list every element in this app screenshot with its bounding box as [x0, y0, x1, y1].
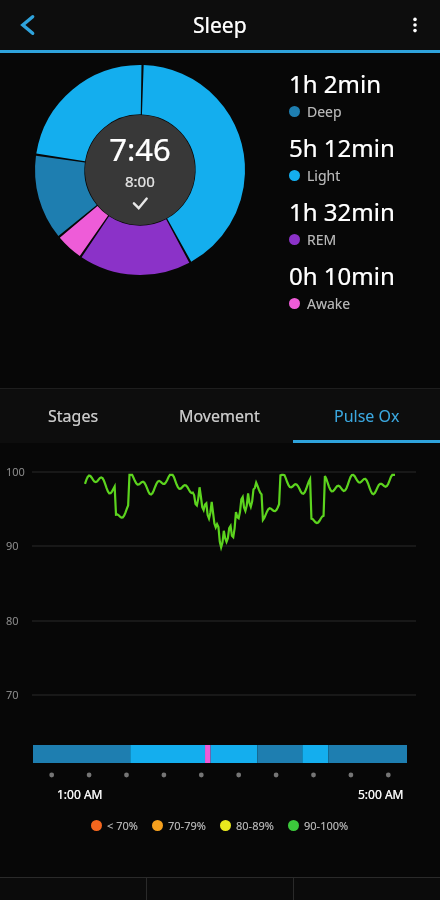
staticText: Light — [307, 166, 341, 185]
staticText: 70-79% — [168, 818, 206, 833]
staticText: 1:00 AM — [57, 786, 103, 802]
button[interactable]: 90-100% — [288, 818, 349, 833]
button[interactable]: 80-89% — [220, 818, 274, 833]
staticText: 5h 12min — [289, 131, 395, 164]
button[interactable]: 70-79% — [152, 818, 206, 833]
staticText: Sleep — [193, 11, 247, 40]
staticText: < 70% — [107, 818, 138, 833]
button[interactable]: Stages — [0, 389, 146, 443]
staticText: 8:00 — [125, 171, 155, 191]
staticText: 80-89% — [236, 818, 274, 833]
button[interactable]: Back — [0, 0, 56, 50]
button[interactable]: 1h 32min — [289, 195, 395, 249]
staticText: 100 — [6, 464, 25, 479]
staticText: Pulse Ox — [334, 405, 400, 427]
staticText: 80 — [6, 613, 19, 628]
staticText: Movement — [179, 405, 260, 427]
staticText: 7:46 — [109, 128, 171, 170]
staticText: Deep — [307, 102, 342, 121]
button[interactable]: Movement — [146, 389, 293, 443]
button[interactable]: More options — [390, 0, 440, 50]
button[interactable]: 0h 10min — [289, 259, 395, 313]
staticText: 90 — [6, 538, 19, 553]
staticText: 70 — [6, 687, 19, 702]
staticText: 1h 32min — [289, 195, 395, 228]
button[interactable]: 5h 12min — [289, 131, 395, 185]
staticText: 0h 10min — [289, 259, 395, 292]
staticText: 90-100% — [304, 818, 349, 833]
button[interactable]: Pulse Ox — [293, 389, 440, 443]
staticText: Awake — [307, 294, 351, 313]
staticText: 1h 2min — [289, 67, 381, 100]
staticText: Stages — [48, 405, 99, 427]
button[interactable]: 1h 2min — [289, 67, 381, 121]
staticText: REM — [307, 230, 337, 249]
button[interactable]: Sleep stages chart — [35, 65, 245, 275]
button[interactable]: < 70% — [91, 818, 138, 833]
staticText: 5:00 AM — [358, 786, 404, 802]
